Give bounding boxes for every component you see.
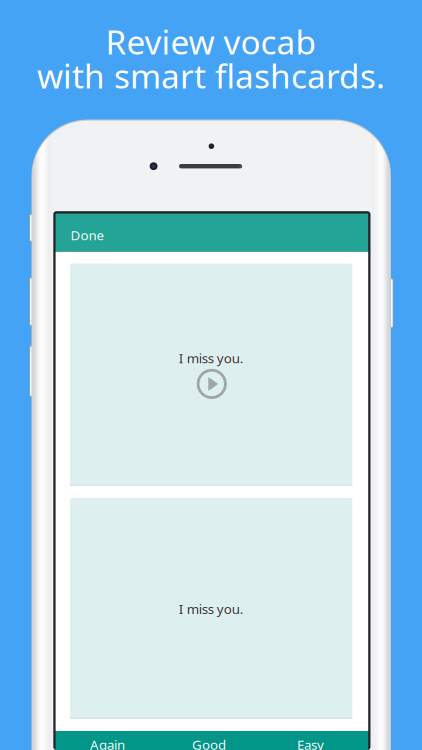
button[interactable]: Good — [56, 731, 368, 750]
button[interactable]: Done — [56, 214, 368, 252]
staticText: Easy — [297, 736, 324, 750]
staticText: I miss you. — [179, 349, 244, 367]
button[interactable]: Easy — [56, 731, 368, 750]
staticText: I miss you. — [179, 600, 244, 618]
staticText: with smart flashcards. — [37, 53, 385, 98]
staticText: Review vocab — [105, 19, 316, 64]
button[interactable]: Again — [56, 731, 368, 750]
staticText: Good — [192, 736, 226, 750]
staticText: Done — [70, 226, 104, 244]
staticText: Again — [90, 736, 125, 750]
